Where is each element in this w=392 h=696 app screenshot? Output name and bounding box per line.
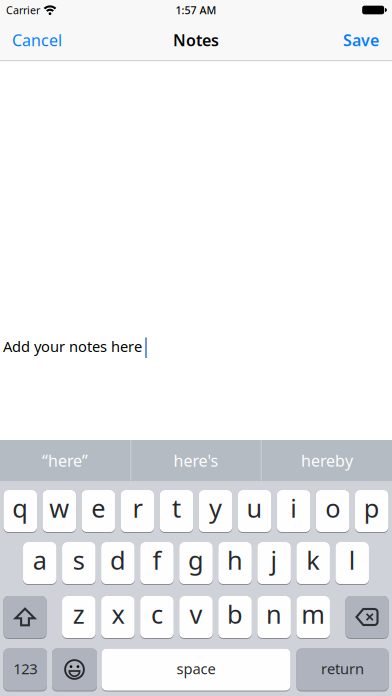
staticText: h: [227, 543, 243, 577]
staticText: n: [266, 597, 282, 631]
button[interactable]: k: [296, 542, 330, 585]
button[interactable]: i: [277, 490, 310, 533]
staticText: r: [132, 491, 142, 525]
button[interactable]: m: [296, 596, 330, 639]
button[interactable]: hereby: [262, 440, 392, 481]
button[interactable]: a: [23, 542, 56, 585]
button[interactable]: space: [101, 648, 290, 691]
button[interactable]: return: [296, 648, 388, 691]
staticText: c: [151, 597, 163, 631]
staticText: j: [271, 543, 278, 577]
button[interactable]: n: [257, 596, 291, 639]
staticText: Carrier: [6, 3, 40, 17]
button[interactable]: l: [335, 542, 369, 585]
staticText: hereby: [301, 450, 353, 471]
button[interactable]: q: [3, 490, 37, 533]
button[interactable]: p: [355, 490, 388, 533]
staticText: w: [49, 491, 69, 525]
button[interactable]: d: [101, 542, 135, 585]
staticText: 1:57 AM: [175, 3, 216, 17]
button[interactable]: Save: [343, 29, 392, 51]
staticText: Add your notes here: [3, 336, 142, 356]
button[interactable]: c: [140, 596, 174, 639]
staticText: i: [290, 491, 297, 525]
button[interactable]: here's: [131, 440, 261, 481]
button[interactable]: o: [316, 490, 349, 533]
button[interactable]: s: [62, 542, 96, 585]
button[interactable]: e: [82, 490, 115, 533]
staticText: m: [301, 597, 325, 631]
staticText: k: [306, 543, 320, 577]
staticText: space: [176, 659, 215, 678]
staticText: d: [110, 543, 126, 577]
button[interactable]: Emoji: [52, 648, 97, 691]
button[interactable]: w: [42, 490, 76, 533]
button[interactable]: t: [160, 490, 193, 533]
staticText: q: [12, 491, 28, 525]
button[interactable]: y: [199, 490, 232, 533]
staticText: e: [91, 491, 105, 525]
staticText: g: [188, 543, 204, 577]
button[interactable]: v: [179, 596, 213, 639]
button[interactable]: j: [257, 542, 291, 585]
staticText: y: [209, 491, 222, 525]
staticText: b: [227, 597, 243, 631]
button[interactable]: z: [62, 596, 96, 639]
staticText: p: [364, 491, 380, 525]
button[interactable]: r: [121, 490, 154, 533]
button[interactable]: f: [140, 542, 174, 585]
staticText: Cancel: [12, 29, 62, 51]
staticText: t: [172, 491, 181, 525]
staticText: l: [349, 543, 356, 577]
button[interactable]: b: [218, 596, 252, 639]
staticText: “here”: [42, 450, 88, 471]
staticText: f: [152, 543, 161, 577]
button[interactable]: Delete: [345, 596, 388, 639]
staticText: s: [73, 543, 85, 577]
staticText: u: [247, 491, 263, 525]
button[interactable]: u: [238, 490, 271, 533]
staticText: return: [321, 659, 364, 678]
staticText: Notes: [173, 29, 219, 51]
staticText: x: [111, 597, 124, 631]
staticText: z: [73, 597, 85, 631]
staticText: a: [33, 543, 47, 577]
staticText: v: [189, 597, 202, 631]
button[interactable]: Cancel: [0, 29, 62, 51]
button[interactable]: 123: [3, 648, 47, 691]
button[interactable]: “here”: [0, 440, 130, 481]
staticText: here's: [173, 450, 218, 471]
staticText: o: [325, 491, 340, 525]
staticText: 123: [13, 659, 37, 678]
button[interactable]: g: [179, 542, 213, 585]
button[interactable]: h: [218, 542, 252, 585]
staticText: Save: [343, 29, 379, 51]
button[interactable]: x: [101, 596, 135, 639]
button[interactable]: Shift: [3, 596, 46, 639]
